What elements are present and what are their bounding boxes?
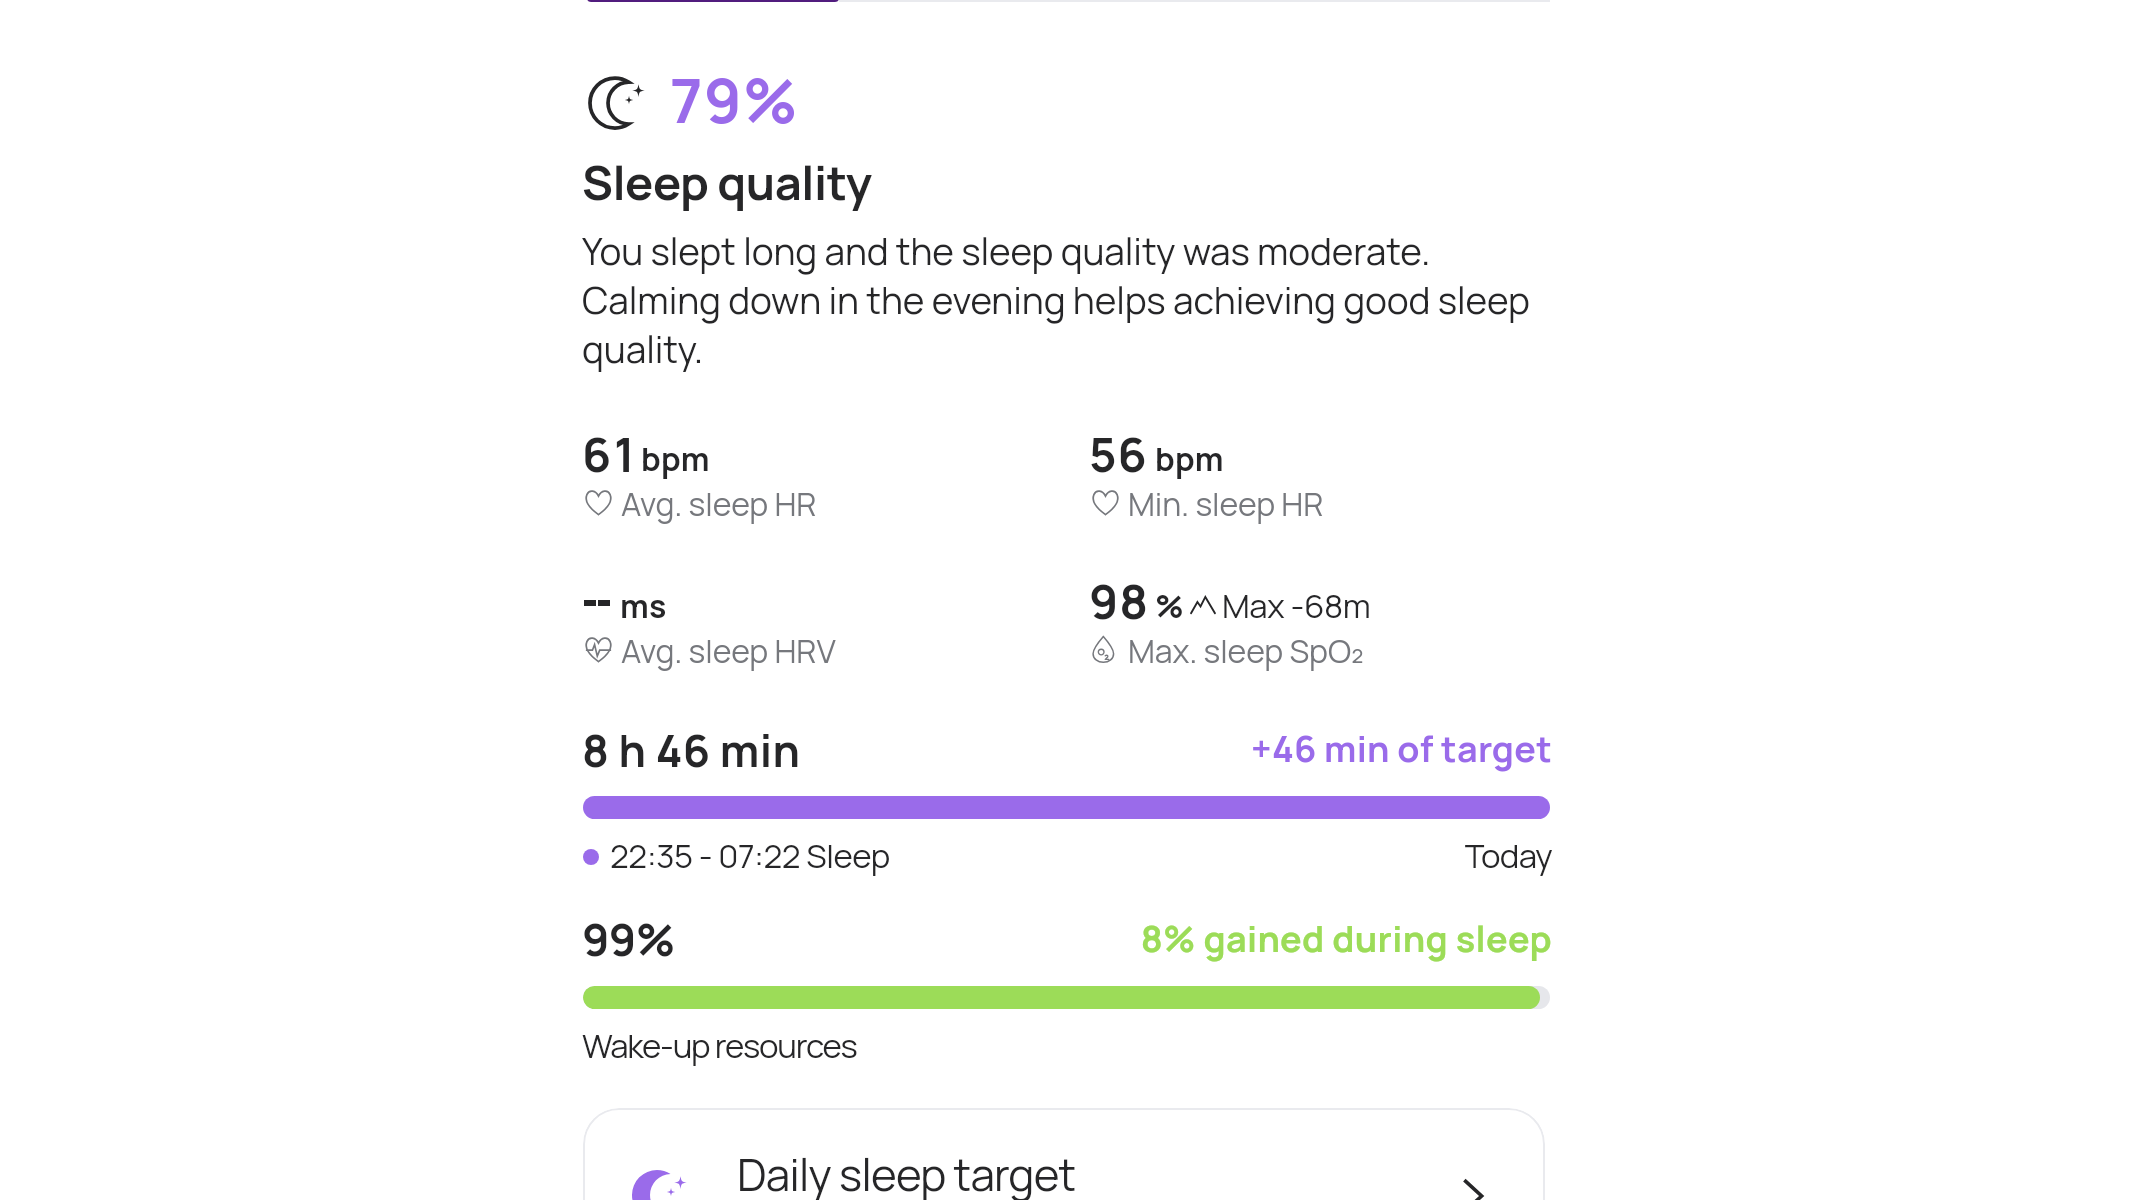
staticText: 22:35 - 07:22 Sleep	[610, 833, 890, 878]
other: Sleep score	[589, 76, 647, 134]
staticText: bpm	[1155, 437, 1224, 481]
staticText: Calming down in the evening helps achiev…	[582, 275, 1530, 326]
staticText: quality.	[582, 324, 704, 375]
staticText: 8 h 46 min	[582, 720, 801, 780]
staticText: 79%	[670, 58, 799, 141]
staticText: 56	[1089, 422, 1148, 486]
staticText: Max. sleep SpO₂	[1128, 629, 1364, 673]
button[interactable]: Sleep tab, selected	[587, 0, 839, 2]
staticText: Sleep quality	[582, 150, 872, 214]
button[interactable]: Daily sleep target	[583, 1108, 1545, 1200]
staticText: bpm	[641, 437, 710, 481]
staticText: Avg. sleep HR	[621, 482, 817, 526]
staticText: 98	[1089, 569, 1149, 633]
other: Open daily sleep target	[1455, 1178, 1491, 1200]
staticText: Daily sleep target	[737, 1144, 1076, 1200]
staticText: %	[1155, 584, 1185, 628]
staticText: 61	[582, 422, 639, 486]
staticText: Max -68m	[1222, 583, 1371, 628]
staticText: 99%	[582, 909, 675, 969]
staticText: 8% gained during sleep	[652, 914, 1552, 963]
staticText: Wake-up resources	[582, 1023, 857, 1068]
staticText: Today	[652, 833, 1552, 878]
staticText: You slept long and the sleep quality was…	[582, 226, 1431, 277]
staticText: +46 min of target	[652, 724, 1552, 773]
staticText: Avg. sleep HRV	[621, 629, 836, 673]
staticText: Min. sleep HR	[1128, 482, 1324, 526]
staticText: ms	[620, 584, 667, 628]
